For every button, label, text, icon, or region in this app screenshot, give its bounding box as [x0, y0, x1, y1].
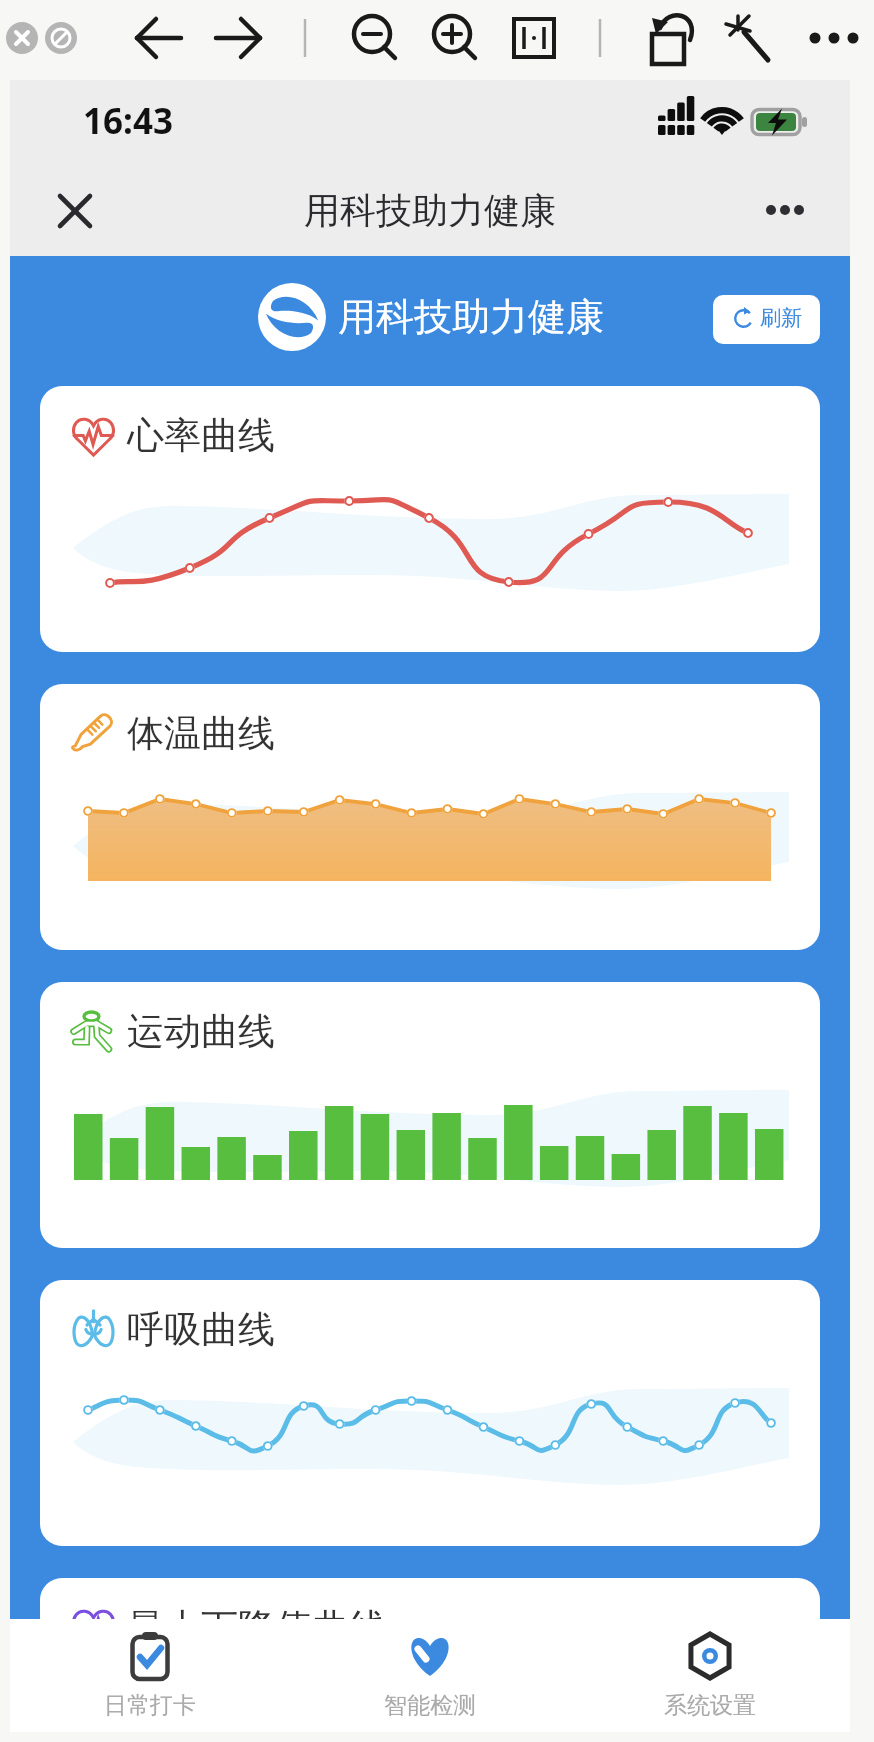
button[interactable]: 体温曲线 [40, 684, 820, 950]
button[interactable]: 呼吸曲线 [40, 1280, 820, 1546]
button[interactable]: 智能检测 [290, 1619, 570, 1732]
button[interactable]: 系统设置 [570, 1619, 850, 1732]
staticText: 最大下降值曲线 [127, 1604, 386, 1651]
button[interactable]: More options [755, 186, 831, 236]
staticText: 系统设置 [664, 1691, 756, 1720]
staticText: 智能检测 [384, 1691, 476, 1720]
staticText: 日常打卡 [104, 1691, 196, 1720]
staticText: 呼吸曲线 [127, 1306, 275, 1353]
button[interactable]: Close [45, 186, 105, 236]
staticText: 用科技助力健康 [304, 188, 556, 233]
staticText: 用科技助力健康 [338, 293, 604, 341]
button[interactable]: 刷新 [713, 295, 820, 344]
staticText: 心率曲线 [127, 412, 275, 459]
button[interactable]: 心率曲线 [40, 386, 820, 652]
button[interactable]: 运动曲线 [40, 982, 820, 1248]
staticText: 16:43 [83, 97, 173, 145]
button[interactable]: 最大下降值曲线 [40, 1578, 820, 1732]
staticText: 刷新 [760, 305, 802, 331]
staticText: 运动曲线 [127, 1008, 275, 1055]
button[interactable]: 日常打卡 [10, 1619, 290, 1732]
staticText: 体温曲线 [127, 710, 275, 757]
